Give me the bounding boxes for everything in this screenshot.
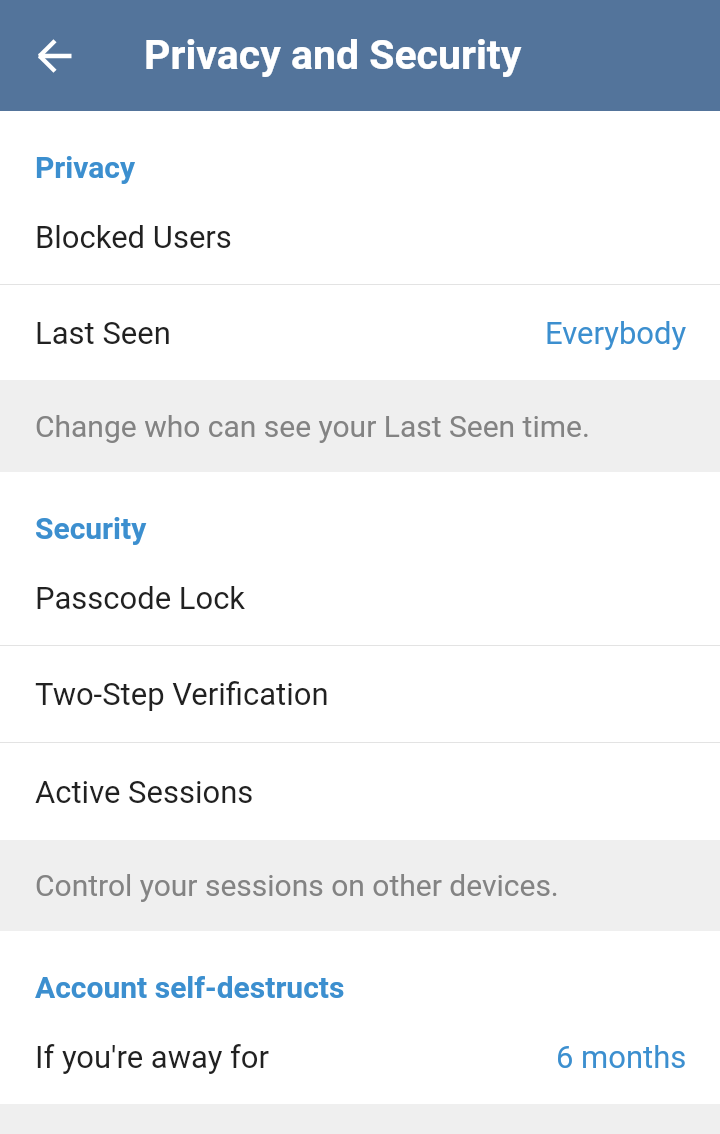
staticText: Last Seen [35,315,171,351]
button[interactable]: Blocked Users [0,219,720,284]
staticText: 6 months [556,1039,687,1075]
button[interactable]: Back [16,17,94,95]
button[interactable]: If you're away for [0,1039,720,1104]
staticText: Privacy [35,150,136,185]
staticText: Two-Step Verification [35,676,329,712]
staticText: Security [35,511,147,546]
staticText: Account self-destructs [35,970,345,1005]
staticText: Active Sessions [35,774,254,810]
staticText: Control your sessions on other devices. [35,868,559,903]
button[interactable]: Active Sessions [0,743,720,840]
staticText: Passcode Lock [35,580,246,616]
staticText: Everybody [545,315,687,351]
button[interactable]: Passcode Lock [0,580,720,645]
staticText: Change who can see your Last Seen time. [35,409,590,444]
button[interactable]: Last Seen [0,285,720,380]
button[interactable]: Two-Step Verification [0,646,720,742]
staticText: Blocked Users [35,219,232,255]
staticText: Privacy and Security [144,31,522,79]
staticText: If you're away for [35,1039,269,1075]
